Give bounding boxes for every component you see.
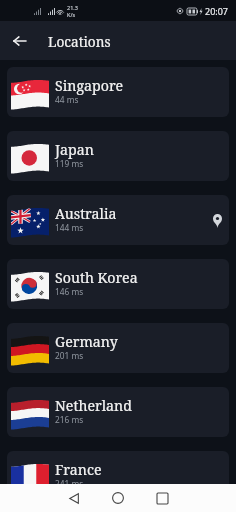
button[interactable]: Japan xyxy=(7,131,229,181)
staticText: 44 ms xyxy=(55,94,79,105)
button[interactable]: Back xyxy=(59,484,89,512)
staticText: 21.3 xyxy=(67,4,78,11)
button[interactable]: Back xyxy=(7,29,31,53)
staticText: Netherland xyxy=(55,396,132,415)
staticText: 119 ms xyxy=(55,158,84,169)
button[interactable]: Singapore xyxy=(7,67,229,117)
button[interactable]: Home xyxy=(103,484,133,512)
button[interactable]: Netherland xyxy=(7,387,229,437)
button[interactable]: Recents xyxy=(147,484,177,512)
button[interactable]: Selected location xyxy=(208,211,226,229)
button[interactable]: Germany xyxy=(7,323,229,373)
staticText: Australia xyxy=(55,204,117,223)
staticText: 20:07 xyxy=(205,5,229,17)
button[interactable]: France xyxy=(7,451,229,501)
staticText: 216 ms xyxy=(55,414,84,425)
staticText: France xyxy=(55,460,102,479)
staticText: 241 ms xyxy=(55,478,84,489)
staticText: 144 ms xyxy=(55,222,84,233)
staticText: Germany xyxy=(55,332,118,351)
staticText: K/s xyxy=(67,11,76,18)
staticText: 146 ms xyxy=(55,286,84,297)
staticText: Singapore xyxy=(55,76,124,95)
button[interactable]: South Korea xyxy=(7,259,229,309)
button[interactable]: Australia xyxy=(7,195,229,245)
staticText: Japan xyxy=(55,140,94,159)
staticText: 201 ms xyxy=(55,350,84,361)
staticText: Locations xyxy=(48,32,111,51)
staticText: South Korea xyxy=(55,268,138,287)
